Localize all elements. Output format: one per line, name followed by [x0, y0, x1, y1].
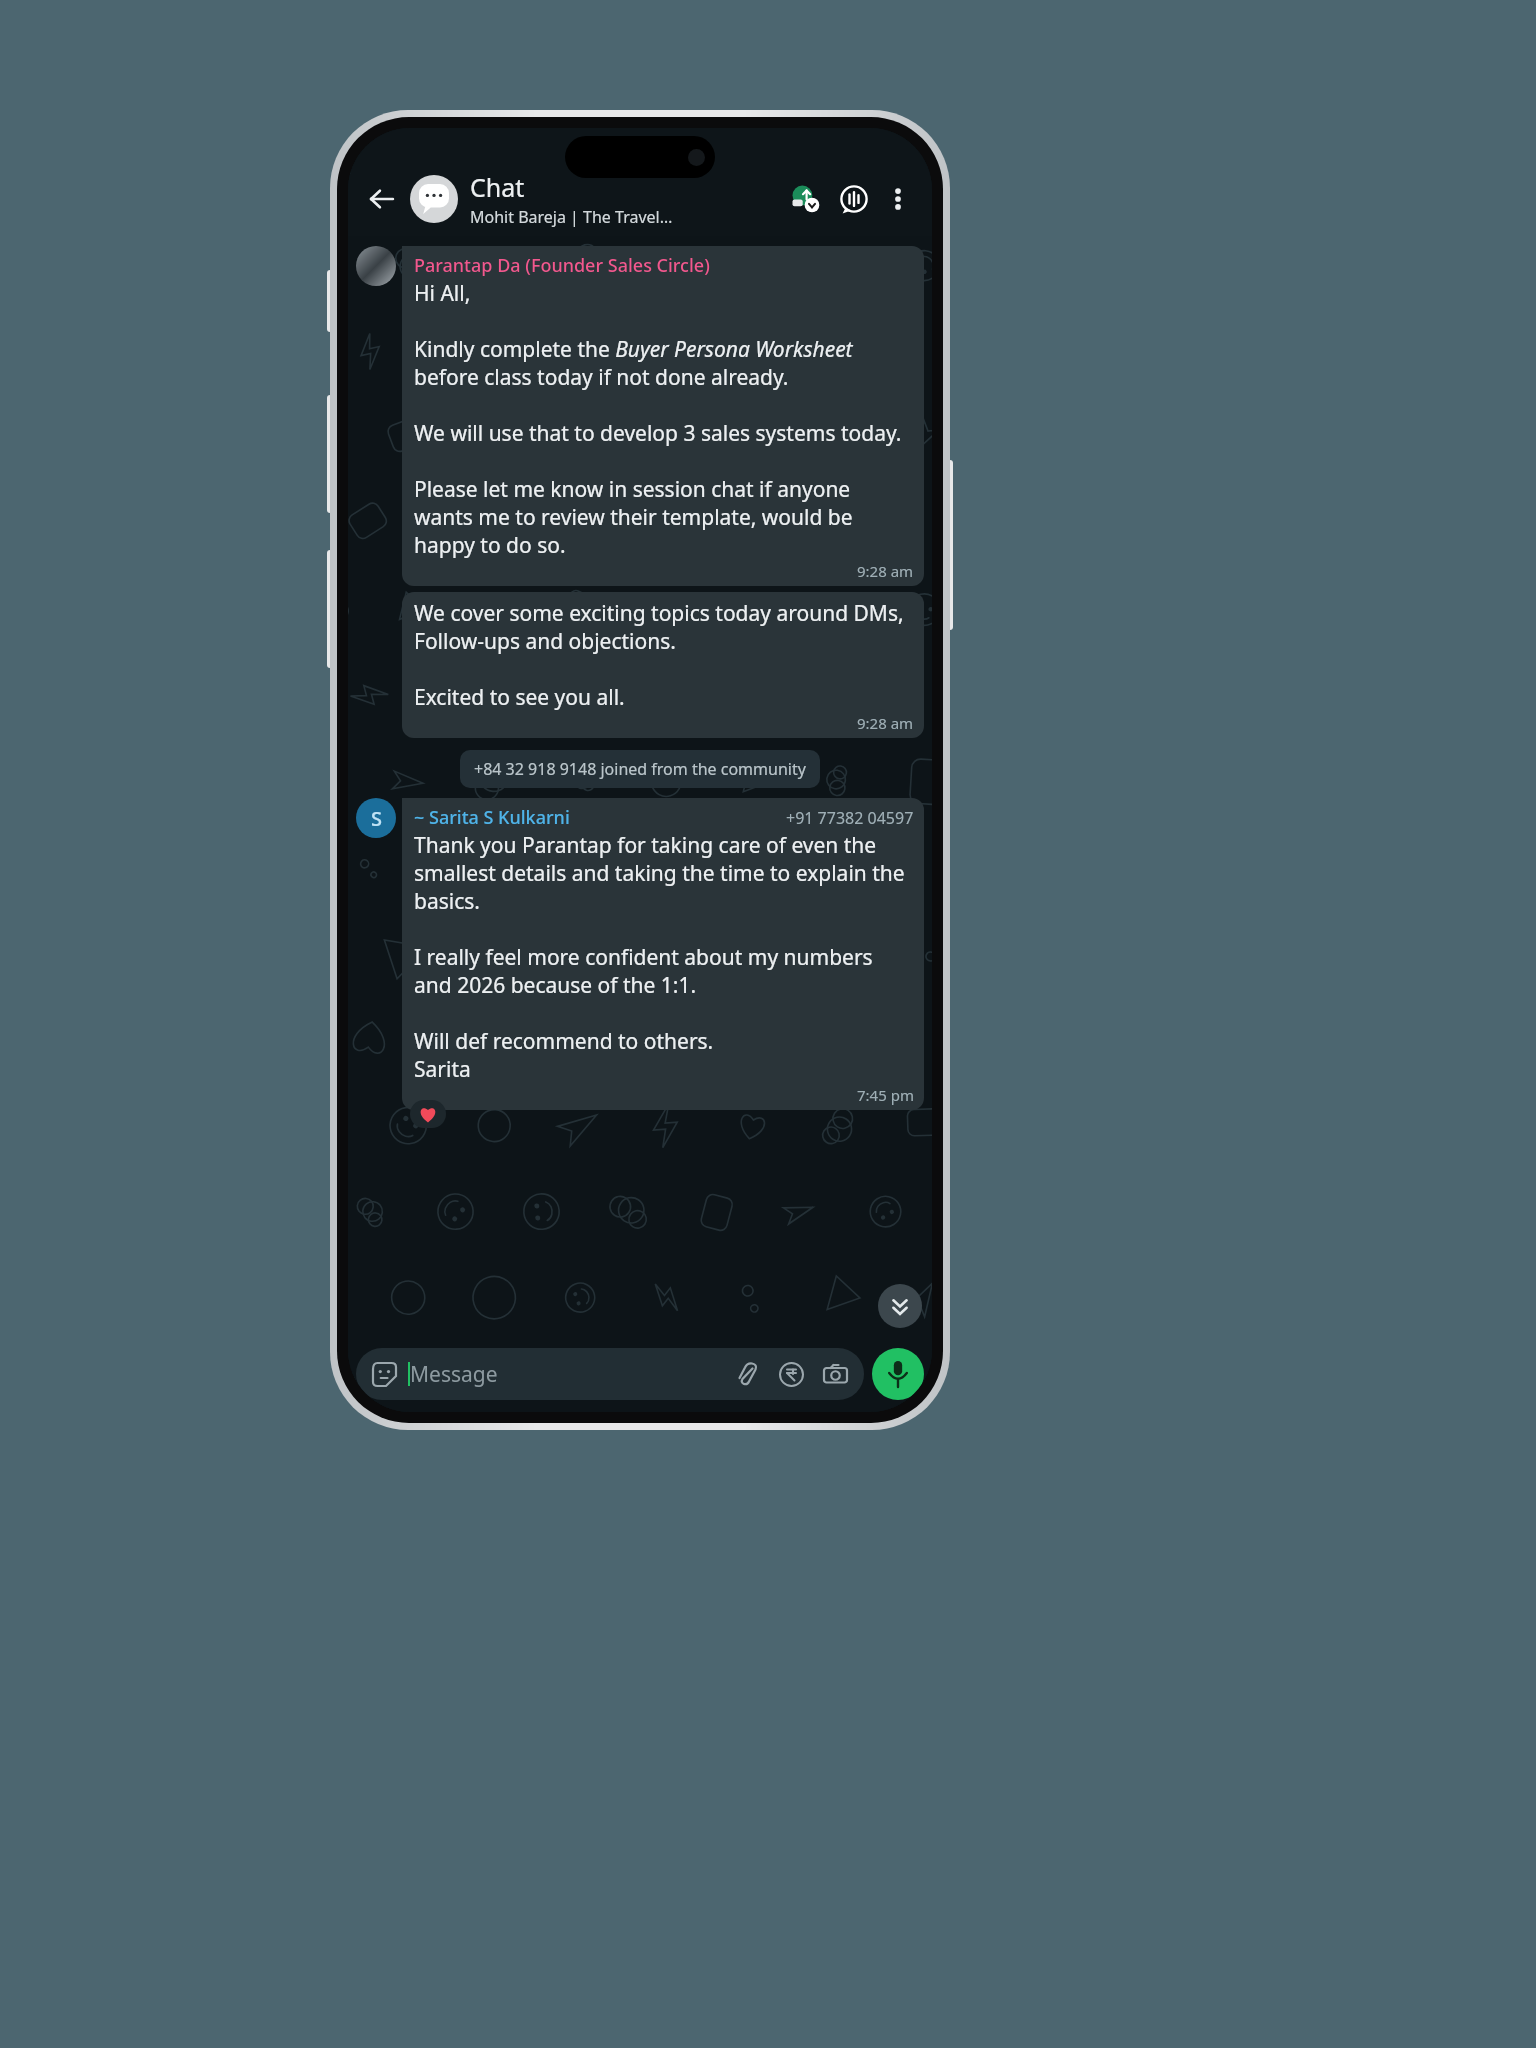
button[interactable]: ~ Sarita S Kulkarni: [402, 798, 924, 1110]
button[interactable]: Meta AI: [832, 177, 876, 221]
button[interactable]: Stickers: [368, 1358, 400, 1390]
button[interactable]: Stickers: [356, 1348, 864, 1400]
staticText: We cover some exciting topics today arou…: [414, 599, 914, 711]
button[interactable]: Voice message: [872, 1348, 924, 1400]
button[interactable]: Attach: [730, 1357, 764, 1391]
button[interactable]: Back: [360, 177, 404, 221]
staticText: Chat: [470, 170, 525, 204]
button[interactable]: Sender photo: [356, 246, 396, 286]
staticText: Mohit Bareja | The Travel…: [470, 206, 673, 228]
button[interactable]: [410, 1100, 446, 1128]
button[interactable]: Chat: [470, 170, 784, 228]
staticText: Thank you Parantap for taking care of ev…: [414, 831, 914, 1083]
staticText: ~ Sarita S Kulkarni: [414, 805, 570, 830]
staticText: +84 32 918 9148 joined from the communit…: [474, 758, 806, 780]
button[interactable]: Pending updates: [784, 177, 828, 221]
button[interactable]: Parantap Da (Founder Sales Circle): [402, 246, 924, 586]
staticText: 7:45 pm: [857, 1085, 914, 1105]
staticText: Hi All, Kindly complete the Buyer Person…: [414, 279, 914, 559]
staticText: +91 77382 04597: [786, 807, 914, 829]
staticText: 9:28 am: [857, 561, 914, 581]
button[interactable]: We cover some exciting topics today arou…: [402, 592, 924, 738]
staticText: 9:28 am: [857, 713, 914, 733]
button[interactable]: Camera: [818, 1357, 852, 1391]
staticText: Message: [410, 1360, 498, 1389]
button[interactable]: S: [356, 798, 396, 838]
button[interactable]: Scroll to bottom: [878, 1284, 922, 1328]
button[interactable]: Payment: [774, 1357, 808, 1391]
staticText: Parantap Da (Founder Sales Circle): [414, 253, 710, 278]
button[interactable]: [410, 175, 458, 223]
staticText: S: [371, 805, 382, 832]
button[interactable]: More options: [878, 179, 918, 219]
